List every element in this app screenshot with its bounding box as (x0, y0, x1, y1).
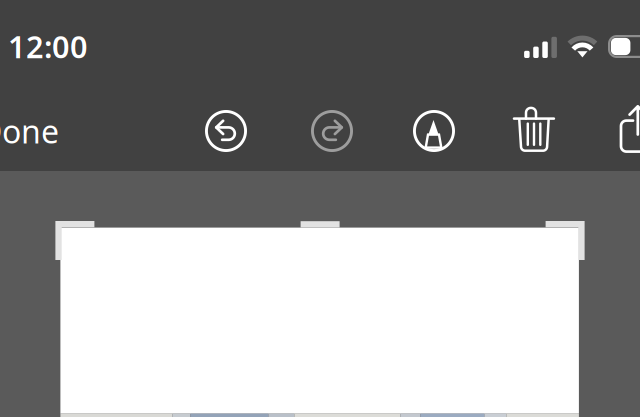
staticText: 12:00 (8, 26, 88, 67)
button[interactable]: Share (620, 105, 640, 155)
button[interactable]: Undo (205, 110, 247, 152)
button[interactable]: Delete (514, 109, 556, 155)
button[interactable]: Redo (311, 110, 353, 152)
button[interactable]: Markup (413, 110, 455, 152)
button[interactable]: Done (0, 109, 59, 153)
staticText: Done (0, 110, 59, 152)
